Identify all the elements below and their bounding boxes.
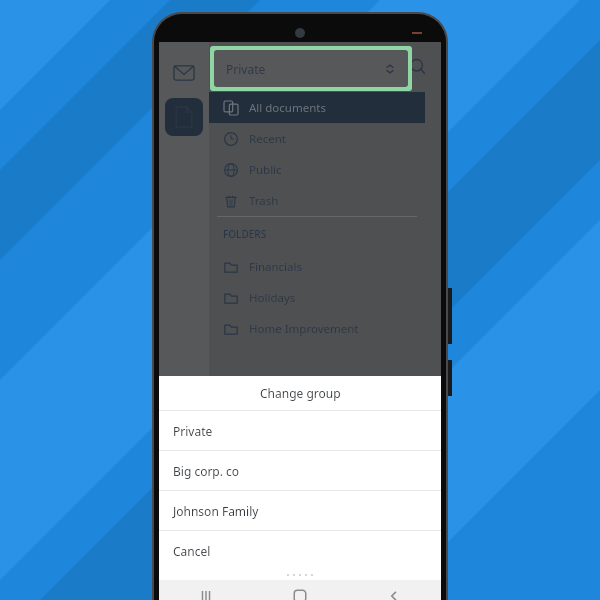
button[interactable]: Search: [403, 52, 433, 82]
button[interactable]: Cancel: [159, 531, 441, 570]
button[interactable]: Private: [217, 47, 395, 87]
staticText: Private: [229, 59, 269, 75]
button[interactable]: Holidays: [209, 282, 425, 313]
staticText: Home Improvement: [249, 321, 359, 337]
button[interactable]: Home Improvement: [209, 313, 425, 344]
button[interactable]: Back: [347, 580, 441, 600]
staticText: Cancel: [173, 543, 211, 559]
button[interactable]: Big corp. co: [159, 451, 441, 490]
staticText: FOLDERS: [223, 227, 267, 241]
staticText: Holidays: [249, 290, 296, 306]
button[interactable]: Home: [253, 580, 347, 600]
button[interactable]: Financials: [209, 251, 425, 282]
staticText: Change group: [260, 385, 341, 401]
button[interactable]: Trash: [209, 185, 425, 216]
staticText: Private: [226, 61, 266, 77]
staticText: Trash: [249, 193, 279, 209]
staticText: Private: [173, 423, 213, 439]
staticText: Big corp. co: [173, 463, 240, 479]
button[interactable]: Documents: [165, 98, 203, 136]
button[interactable]: Private: [159, 411, 441, 450]
button[interactable]: Recents: [159, 580, 253, 600]
button[interactable]: Mail: [165, 54, 203, 92]
staticText: Public: [249, 162, 282, 178]
staticText: Johnson Family: [173, 503, 259, 519]
button[interactable]: Public: [209, 154, 425, 185]
staticText: Financials: [249, 259, 303, 275]
button[interactable]: Private: [214, 50, 408, 87]
button[interactable]: All documents: [209, 92, 425, 123]
button[interactable]: Recent: [209, 123, 425, 154]
staticText: All documents: [249, 100, 326, 116]
staticText: Recent: [249, 131, 286, 147]
button[interactable]: Johnson Family: [159, 491, 441, 530]
